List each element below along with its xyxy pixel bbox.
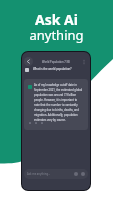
button[interactable]: Action	[39, 120, 44, 125]
staticText: World Population 7.9B	[42, 60, 70, 64]
staticText: Ask me anything...	[27, 172, 51, 176]
button[interactable]: Action	[27, 120, 32, 125]
button[interactable]: Back	[24, 57, 33, 66]
button[interactable]: Ask me anything...	[24, 169, 88, 179]
button[interactable]: More options	[79, 57, 88, 66]
staticText: What is the world population?	[33, 67, 72, 71]
button[interactable]: Action	[33, 120, 38, 125]
staticText: As of my knowledge cutoff date in Septem…	[34, 83, 83, 122]
staticText: Ask Ai	[0, 10, 113, 29]
staticText: anything	[0, 26, 113, 44]
